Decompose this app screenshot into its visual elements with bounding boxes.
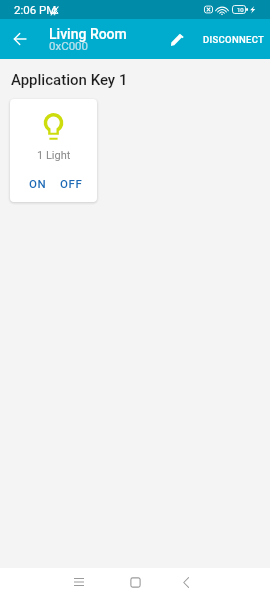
button[interactable]: OFF	[54, 174, 89, 193]
button[interactable]: Back	[3, 19, 36, 59]
staticText: OFF	[60, 177, 83, 190]
staticText: 1 Light	[37, 149, 71, 162]
button[interactable]: ON	[23, 174, 53, 193]
staticText: Living Room	[49, 26, 127, 42]
staticText: DISCONNECT	[203, 34, 265, 45]
button[interactable]: 1 Light	[10, 99, 97, 202]
staticText: 10	[237, 6, 244, 13]
button[interactable]: Back	[168, 566, 204, 598]
button[interactable]: Edit	[159, 19, 195, 59]
staticText: Application Key 1	[11, 71, 128, 89]
button[interactable]: DISCONNECT	[195, 19, 270, 59]
button[interactable]: Home	[117, 566, 153, 598]
staticText: 0xC000	[49, 39, 89, 52]
staticText: ON	[29, 177, 47, 190]
button[interactable]: Recent apps	[61, 566, 97, 598]
staticText: 2:06 PM	[14, 3, 57, 16]
